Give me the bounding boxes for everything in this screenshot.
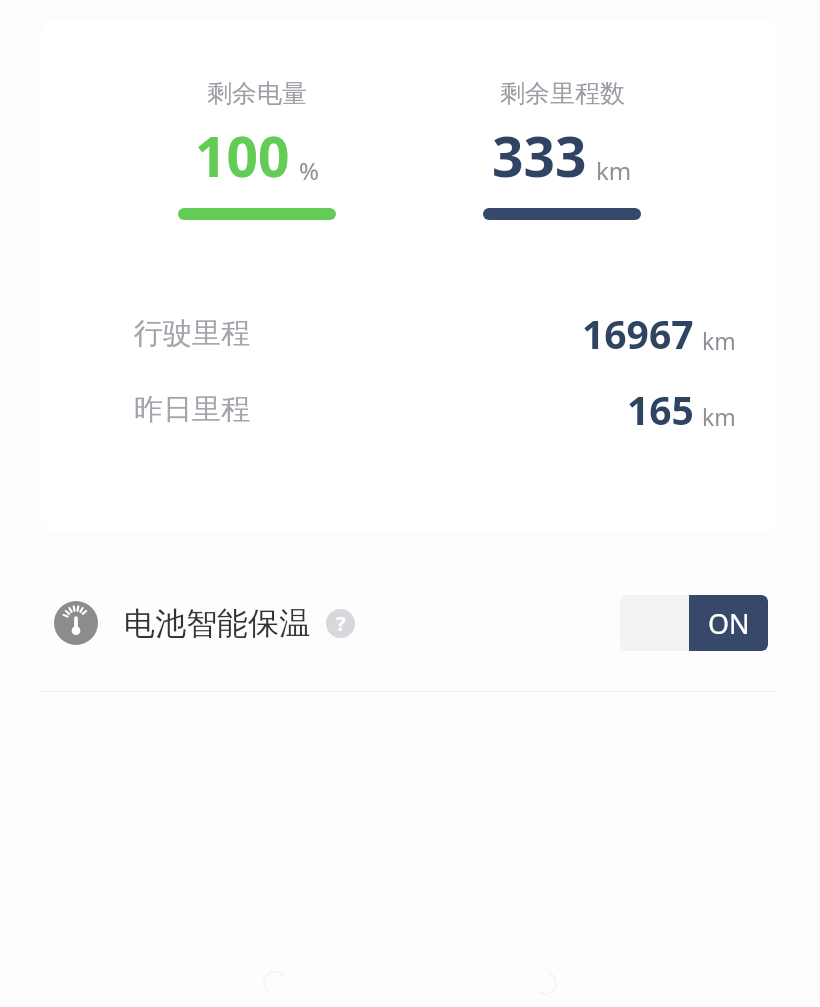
staticText: ? — [336, 610, 346, 637]
staticText: 16967 — [582, 307, 694, 360]
staticText: 165 — [627, 383, 694, 436]
staticText: 行驶里程 — [134, 315, 250, 352]
staticText: 昨日里程 — [134, 391, 250, 428]
button[interactable]: 电池智能保温开关 ON — [620, 595, 768, 651]
staticText: 剩余里程数 — [500, 78, 625, 109]
staticText: 333 — [492, 118, 587, 193]
staticText: km — [596, 154, 632, 187]
staticText: 100 — [195, 118, 290, 193]
button[interactable]: 帮助 — [326, 609, 355, 638]
staticText: % — [299, 154, 319, 187]
staticText: km — [702, 401, 736, 432]
staticText: ON — [708, 605, 750, 642]
staticText: 剩余电量 — [207, 78, 307, 109]
button[interactable]: 电池智能保温 — [0, 583, 820, 663]
staticText: km — [702, 325, 736, 356]
staticText: 电池智能保温 — [124, 604, 310, 643]
